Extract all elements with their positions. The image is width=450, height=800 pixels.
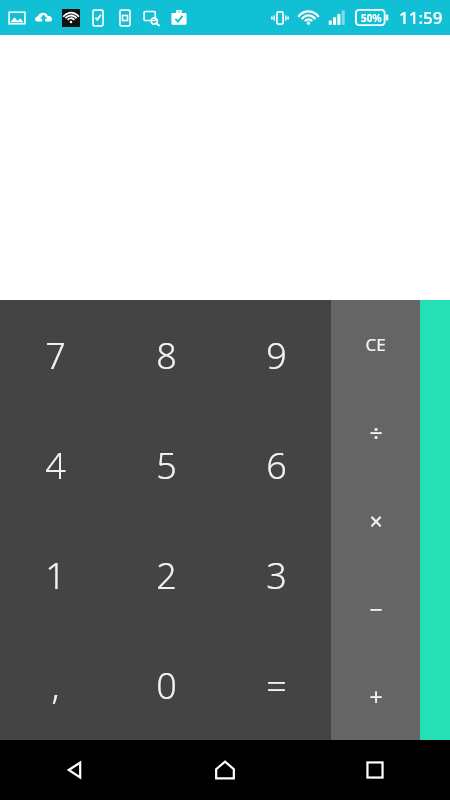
button[interactable]: Recents (300, 740, 450, 800)
staticText: − (369, 593, 383, 624)
button[interactable]: Back (0, 740, 150, 800)
button[interactable]: = (221, 630, 331, 740)
button[interactable]: 9 (221, 300, 331, 410)
button[interactable]: 3 (221, 520, 331, 630)
staticText: , (51, 661, 60, 710)
staticText: 1 (45, 551, 66, 600)
button[interactable]: ÷ (331, 388, 420, 476)
staticText: 2 (156, 551, 177, 600)
staticText: 50% (361, 11, 382, 25)
staticText: × (369, 505, 383, 536)
staticText: 11:59 (399, 6, 443, 29)
staticText: 5 (156, 441, 177, 490)
button[interactable]: 5 (111, 410, 221, 520)
button[interactable]: 1 (0, 520, 111, 630)
staticText: CE (365, 333, 386, 356)
staticText: 0 (156, 661, 177, 710)
staticText: 4 (45, 441, 66, 490)
staticText: 8 (156, 331, 177, 380)
button[interactable]: × (331, 476, 420, 564)
staticText: + (369, 681, 383, 712)
staticText: ÷ (369, 417, 383, 448)
button[interactable]: Home (150, 740, 300, 800)
button[interactable]: 4 (0, 410, 111, 520)
button[interactable]: 0 (111, 630, 221, 740)
button[interactable]: , (0, 630, 111, 740)
button[interactable]: 8 (111, 300, 221, 410)
button[interactable]: 2 (111, 520, 221, 630)
button[interactable]: 6 (221, 410, 331, 520)
button[interactable]: + (331, 652, 420, 740)
button[interactable]: CE (331, 300, 420, 388)
staticText: = (266, 661, 287, 710)
staticText: 7 (45, 331, 66, 380)
staticText: 6 (266, 441, 287, 490)
staticText: 9 (266, 331, 287, 380)
button[interactable]: − (331, 564, 420, 652)
staticText: 3 (266, 551, 287, 600)
button[interactable]: 7 (0, 300, 111, 410)
